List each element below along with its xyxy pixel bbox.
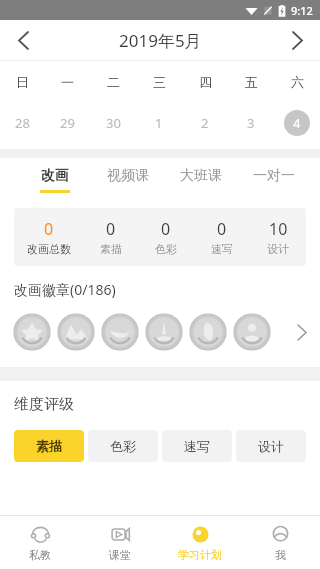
staticText: 设计 <box>258 438 284 454</box>
button[interactable]: Next month <box>274 20 320 60</box>
button[interactable]: 30 <box>90 103 136 143</box>
button[interactable]: 视频课 <box>91 158 164 202</box>
staticText: 速写 <box>211 242 233 256</box>
staticText: 0 <box>161 218 171 240</box>
staticText: 2 <box>201 114 209 132</box>
staticText: 维度评级 <box>14 395 74 414</box>
button[interactable]: 0 <box>14 218 83 256</box>
staticText: 10 <box>269 218 288 240</box>
staticText: 学习计划 <box>178 548 222 562</box>
staticText: 改画徽章(0/186) <box>14 280 116 299</box>
staticText: 改画 <box>41 167 69 185</box>
staticText: 色彩 <box>110 438 136 454</box>
button[interactable]: 我 <box>240 516 320 569</box>
staticText: 私教 <box>29 548 51 562</box>
button[interactable]: 大班课 <box>164 158 237 202</box>
staticText: 一对一 <box>253 167 295 185</box>
staticText: 2019年5月 <box>119 29 202 52</box>
button[interactable]: 0 <box>83 218 138 256</box>
button[interactable]: 一对一 <box>237 158 310 202</box>
button[interactable]: 10 <box>250 218 306 256</box>
staticText: 六 <box>291 74 304 90</box>
button[interactable]: 素描 <box>14 430 84 462</box>
button[interactable]: 0 <box>138 218 194 256</box>
staticText: 3 <box>247 114 255 132</box>
button[interactable]: 2 <box>182 103 228 143</box>
staticText: 设计 <box>267 242 289 256</box>
staticText: 课堂 <box>109 548 131 562</box>
staticText: 四 <box>199 74 212 90</box>
staticText: 0 <box>106 218 116 240</box>
staticText: 视频课 <box>107 167 149 185</box>
button[interactable]: 学习计划 <box>160 516 240 569</box>
button[interactable]: 私教 <box>0 516 80 569</box>
staticText: 素描 <box>100 242 122 256</box>
button[interactable]: 设计 <box>236 430 306 462</box>
button[interactable]: 28 <box>0 103 45 143</box>
staticText: 1 <box>155 114 163 132</box>
staticText: 五 <box>245 74 258 90</box>
staticText: 我 <box>275 548 286 562</box>
staticText: 28 <box>15 114 30 132</box>
staticText: 0 <box>217 218 227 240</box>
staticText: 三 <box>153 74 166 90</box>
button[interactable]: 速写 <box>162 430 232 462</box>
staticText: 二 <box>107 74 120 90</box>
button[interactable]: 29 <box>45 103 90 143</box>
button[interactable]: 改画 <box>18 158 91 202</box>
staticText: 一 <box>61 74 74 90</box>
staticText: 改画总数 <box>27 242 71 256</box>
staticText: 日 <box>16 74 29 90</box>
button[interactable]: 3 <box>228 103 274 143</box>
button[interactable]: 1 <box>136 103 182 143</box>
staticText: 0 <box>44 218 54 240</box>
button[interactable]: 0 <box>194 218 250 256</box>
staticText: 29 <box>60 114 75 132</box>
staticText: 30 <box>106 114 121 132</box>
button[interactable]: 4 <box>274 103 320 143</box>
staticText: 素描 <box>36 438 62 454</box>
staticText: 大班课 <box>180 167 222 185</box>
staticText: 9:12 <box>291 3 313 18</box>
staticText: 4 <box>293 114 301 132</box>
button[interactable]: Previous month <box>0 20 46 60</box>
staticText: 色彩 <box>155 242 177 256</box>
button[interactable] <box>0 309 320 355</box>
button[interactable]: 色彩 <box>88 430 158 462</box>
button[interactable]: 课堂 <box>80 516 160 569</box>
staticText: 速写 <box>184 438 210 454</box>
